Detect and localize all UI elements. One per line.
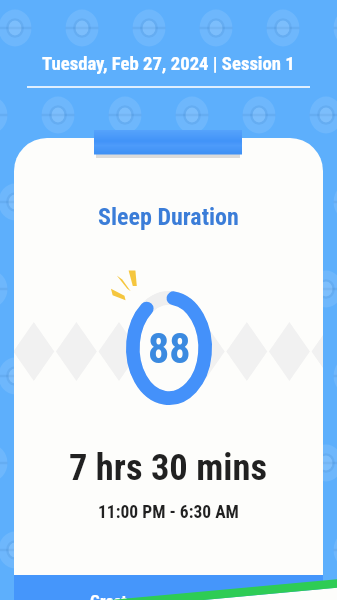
staticText: 7 hrs 30 mins — [69, 446, 268, 489]
staticText: Sleep Duration — [98, 203, 239, 231]
staticText: 88 — [148, 324, 191, 373]
staticText: 11:00 PM - 6:30 AM — [98, 502, 239, 523]
staticText: Great morning! — [90, 591, 192, 600]
staticText: Tuesday, Feb 27, 2024 | Session 1 — [42, 53, 295, 75]
